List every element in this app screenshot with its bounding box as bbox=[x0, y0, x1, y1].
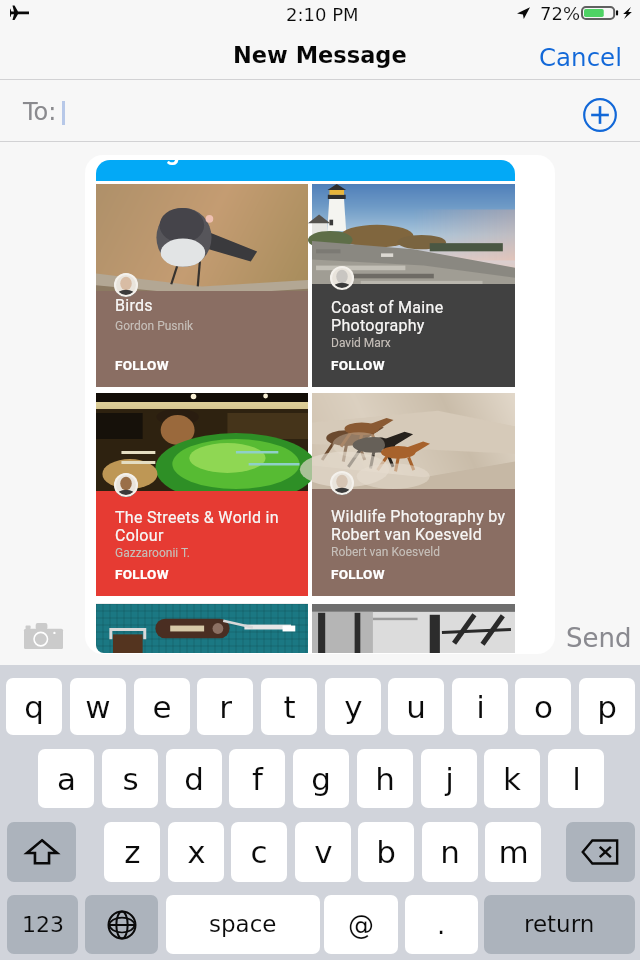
staticText: z bbox=[124, 834, 141, 870]
button[interactable]: f bbox=[229, 749, 285, 808]
button[interactable]: q bbox=[6, 678, 62, 735]
staticText: David Marx bbox=[331, 336, 391, 350]
button[interactable]: The Streets & World in Colour bbox=[96, 393, 308, 596]
staticText: y bbox=[344, 689, 363, 725]
staticText: Robert van Koesveld bbox=[331, 545, 441, 559]
button[interactable]: s bbox=[102, 749, 158, 808]
button[interactable]: Camera bbox=[12, 612, 74, 660]
staticText: p bbox=[597, 689, 617, 725]
button[interactable]: Add contact bbox=[577, 92, 622, 137]
button[interactable]: Send bbox=[556, 612, 640, 664]
staticText: Send bbox=[566, 623, 632, 653]
button[interactable]: g bbox=[293, 749, 349, 808]
button[interactable]: Wildlife Photography by Robert van Koesv… bbox=[312, 393, 515, 596]
staticText: x bbox=[187, 834, 206, 870]
staticText: u bbox=[406, 689, 426, 725]
staticText: n bbox=[440, 834, 460, 870]
staticText: . bbox=[437, 910, 446, 940]
staticText: Gordon Pusnik bbox=[115, 319, 194, 333]
button[interactable]: b bbox=[358, 822, 414, 882]
button[interactable]: Switch keyboard bbox=[85, 895, 158, 954]
staticText: g bbox=[311, 761, 331, 797]
staticText: f bbox=[252, 761, 263, 797]
button[interactable]: j bbox=[421, 749, 477, 808]
staticText: To: bbox=[23, 98, 57, 126]
staticText: New Message bbox=[233, 42, 407, 68]
staticText: Coast of Maine Photography bbox=[331, 298, 512, 335]
button[interactable]: h bbox=[357, 749, 413, 808]
staticText: Google+ bbox=[120, 155, 214, 166]
button[interactable]: 123 bbox=[7, 895, 78, 954]
staticText: FOLLOW bbox=[331, 566, 385, 582]
staticText: o bbox=[534, 689, 553, 725]
staticText: return bbox=[524, 911, 595, 938]
staticText: i bbox=[476, 689, 485, 725]
staticText: q bbox=[24, 689, 44, 725]
staticText: @ bbox=[348, 910, 374, 940]
staticText: Gazzaroonii T. bbox=[115, 546, 191, 560]
staticText: Birds bbox=[115, 296, 305, 315]
staticText: Wildlife Photography by Robert van Koesv… bbox=[331, 507, 512, 544]
button[interactable]: c bbox=[231, 822, 287, 882]
staticText: v bbox=[314, 834, 333, 870]
button[interactable]: r bbox=[197, 678, 253, 735]
button[interactable]: w bbox=[70, 678, 126, 735]
staticText: a bbox=[57, 761, 76, 797]
staticText: m bbox=[498, 834, 529, 870]
staticText: The Streets & World in Colour bbox=[115, 508, 305, 545]
staticText: FOLLOW bbox=[115, 566, 169, 582]
staticText: k bbox=[503, 761, 521, 797]
button[interactable]: e bbox=[134, 678, 190, 735]
button[interactable]: i bbox=[452, 678, 508, 735]
button[interactable]: a bbox=[38, 749, 94, 808]
button[interactable]: m bbox=[485, 822, 541, 882]
staticText: 2:10 PM bbox=[286, 4, 359, 25]
staticText: 72% bbox=[540, 3, 581, 24]
staticText: space bbox=[209, 911, 277, 938]
staticText: FOLLOW bbox=[331, 357, 385, 373]
button[interactable]: @ bbox=[324, 895, 398, 954]
button[interactable]: p bbox=[579, 678, 635, 735]
button[interactable]: n bbox=[422, 822, 478, 882]
staticText: h bbox=[375, 761, 395, 797]
button[interactable]: x bbox=[168, 822, 224, 882]
button[interactable]: o bbox=[515, 678, 571, 735]
staticText: r bbox=[219, 689, 232, 725]
button[interactable]: d bbox=[166, 749, 222, 808]
button[interactable]: l bbox=[548, 749, 604, 808]
staticText: c bbox=[250, 834, 268, 870]
staticText: b bbox=[376, 834, 396, 870]
button[interactable]: Cancel bbox=[520, 34, 636, 80]
staticText: e bbox=[152, 689, 172, 725]
staticText: s bbox=[122, 761, 139, 797]
staticText: l bbox=[572, 761, 581, 797]
button[interactable]: t bbox=[261, 678, 317, 735]
button[interactable]: u bbox=[388, 678, 444, 735]
button[interactable]: return bbox=[484, 895, 635, 954]
button[interactable]: y bbox=[325, 678, 381, 735]
button[interactable]: Birds bbox=[96, 184, 308, 387]
staticText: FOLLOW bbox=[115, 357, 169, 373]
button[interactable]: Shift bbox=[7, 822, 76, 882]
staticText: Cancel bbox=[539, 43, 622, 72]
staticText: w bbox=[85, 689, 111, 725]
button[interactable]: Backspace bbox=[566, 822, 635, 882]
staticText: j bbox=[445, 761, 454, 797]
button[interactable]: . bbox=[405, 895, 478, 954]
button[interactable]: k bbox=[484, 749, 540, 808]
button[interactable]: v bbox=[295, 822, 351, 882]
button[interactable] bbox=[85, 155, 555, 654]
button[interactable]: z bbox=[104, 822, 160, 882]
staticText: 123 bbox=[22, 912, 64, 938]
staticText: d bbox=[184, 761, 204, 797]
button[interactable]: Coast of Maine Photography bbox=[312, 184, 515, 387]
staticText: t bbox=[283, 689, 296, 725]
button[interactable]: space bbox=[166, 895, 320, 954]
